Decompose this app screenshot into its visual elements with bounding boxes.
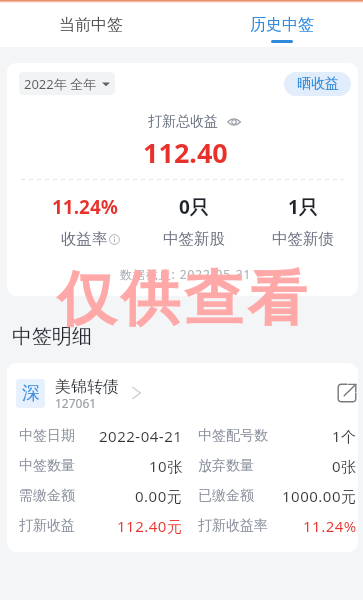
button[interactable]: 2022年 全年 xyxy=(19,72,115,95)
staticText: 历史中签 xyxy=(250,15,314,35)
staticText: 当前中签 xyxy=(59,15,123,35)
staticText: 中签数量 xyxy=(19,457,75,475)
staticText: 1只 xyxy=(288,194,318,220)
staticText: 0.00元 xyxy=(135,486,183,506)
staticText: 收益率 xyxy=(61,229,108,249)
staticText: 中签新股 xyxy=(163,229,225,249)
button[interactable]: 历史中签 xyxy=(181,0,363,47)
staticText: 112.40 xyxy=(143,134,228,171)
staticText: 1000.00元 xyxy=(282,486,357,506)
staticText: 11.24% xyxy=(303,516,357,536)
staticText: 0只 xyxy=(179,194,209,220)
button[interactable]: 当前中签 xyxy=(0,0,181,47)
staticText: 1个 xyxy=(332,426,357,446)
staticText: 中签新债 xyxy=(272,229,334,249)
staticText: 中签配号数 xyxy=(198,427,268,445)
staticText: 112.40元 xyxy=(117,516,183,536)
button[interactable]: 深 xyxy=(16,379,45,408)
staticText: 美锦转债 xyxy=(55,377,119,397)
staticText: 深 xyxy=(22,382,40,405)
staticText: 打新收益率 xyxy=(198,517,268,535)
staticText: 0张 xyxy=(332,456,357,476)
staticText: 打新收益 xyxy=(19,517,75,535)
staticText: 中签日期 xyxy=(19,427,75,445)
button[interactable]: 晒收益 xyxy=(284,72,351,96)
staticText: 11.24% xyxy=(52,194,118,220)
staticText: 需缴金额 xyxy=(19,487,75,505)
staticText: 2022-04-21 xyxy=(99,426,183,446)
staticText: 晒收益 xyxy=(297,75,339,93)
staticText: 10张 xyxy=(149,456,183,476)
staticText: 放弃数量 xyxy=(198,457,254,475)
staticText: 打新总收益 xyxy=(148,113,218,131)
staticText: 已缴金额 xyxy=(198,487,254,505)
staticText: 仅供查看 xyxy=(55,262,309,336)
staticText: 中签明细 xyxy=(12,324,92,349)
button[interactable]: Open in new window xyxy=(337,383,357,403)
staticText: 数据截止: 2022-05-31 xyxy=(120,266,252,282)
staticText: 127061 xyxy=(55,395,97,411)
staticText: 2022年 全年 xyxy=(24,75,97,93)
